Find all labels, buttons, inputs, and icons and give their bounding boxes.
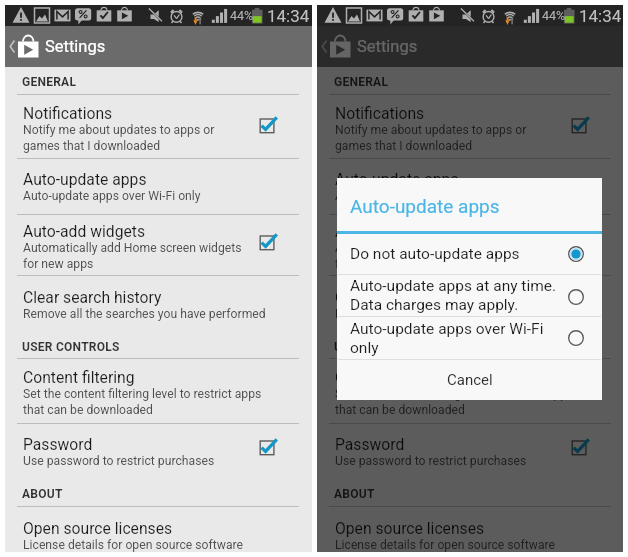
staticText: Set the content filtering level to restr…: [335, 387, 574, 417]
button[interactable]: Toggle: [561, 429, 599, 467]
staticText: ABOUT: [22, 487, 63, 501]
staticText: Content filtering: [23, 368, 135, 386]
staticText: Remove all the searches you have perform…: [23, 307, 266, 321]
staticText: Automatically add Home screen widgets fo…: [23, 241, 242, 271]
button[interactable]: [317, 214, 623, 275]
staticText: License details for open source software: [335, 538, 555, 552]
button[interactable]: Toggle: [249, 224, 287, 262]
staticText: 44%: [542, 8, 566, 23]
staticText: Auto-update apps over Wi-Fi only: [23, 189, 201, 203]
staticText: Auto-update apps: [350, 195, 500, 217]
staticText: Password: [335, 435, 405, 453]
staticText: Auto-update apps over Wi-Fi only: [350, 320, 544, 357]
staticText: 44%: [230, 8, 254, 23]
button[interactable]: [317, 95, 623, 158]
button[interactable]: [317, 158, 623, 214]
button[interactable]: Toggle: [249, 429, 287, 467]
staticText: Clear search history: [23, 288, 162, 306]
staticText: 14:34: [267, 6, 310, 26]
staticText: Auto-update apps: [23, 170, 147, 188]
button[interactable]: Toggle: [249, 107, 287, 145]
button[interactable]: [317, 275, 623, 327]
button[interactable]: Navigate up: [5, 26, 312, 67]
staticText: License details for open source software: [23, 538, 243, 552]
staticText: Set the content filtering level to restr…: [23, 387, 262, 417]
button[interactable]: Cancel: [337, 359, 602, 400]
button[interactable]: [5, 95, 312, 158]
button[interactable]: [5, 158, 312, 214]
button[interactable]: [317, 424, 623, 476]
staticText: ABOUT: [334, 487, 375, 501]
staticText: Open source licenses: [23, 519, 173, 537]
staticText: Auto-update apps: [335, 170, 459, 188]
staticText: Settings: [357, 37, 418, 56]
button[interactable]: Auto-update apps over Wi-Fi only: [337, 317, 602, 359]
staticText: Auto-update apps over Wi-Fi only: [335, 189, 513, 203]
staticText: USER CONTROLS: [22, 340, 120, 354]
staticText: Notify me about updates to apps or games…: [335, 123, 527, 153]
staticText: Password: [23, 435, 93, 453]
staticText: Notifications: [335, 104, 425, 122]
staticText: Use password to restrict purchases: [23, 454, 215, 468]
button[interactable]: Do not auto-update apps: [337, 234, 602, 274]
staticText: Auto-add widgets: [23, 222, 145, 240]
staticText: Do not auto-update apps: [350, 245, 520, 263]
staticText: Settings: [45, 37, 106, 56]
staticText: Clear search history: [335, 288, 474, 306]
button[interactable]: [5, 424, 312, 476]
staticText: Notifications: [23, 104, 113, 122]
staticText: 14:34: [579, 6, 622, 26]
staticText: Automatically add Home screen widgets fo…: [335, 241, 554, 271]
button[interactable]: [5, 359, 312, 424]
staticText: GENERAL: [334, 75, 389, 89]
staticText: Auto-add widgets: [335, 222, 457, 240]
button[interactable]: Toggle: [561, 224, 599, 262]
button[interactable]: Navigate up: [317, 26, 623, 67]
staticText: Cancel: [447, 371, 493, 389]
button[interactable]: [5, 506, 312, 557]
button[interactable]: [317, 506, 623, 557]
button[interactable]: Auto-update apps at any time. Data charg…: [337, 275, 602, 316]
button[interactable]: [317, 359, 623, 424]
staticText: Remove all the searches you have perform…: [335, 307, 578, 321]
staticText: Use password to restrict purchases: [335, 454, 527, 468]
staticText: USER CONTROLS: [334, 340, 432, 354]
staticText: GENERAL: [22, 75, 77, 89]
button[interactable]: [5, 275, 312, 327]
staticText: Content filtering: [335, 368, 447, 386]
staticText: Open source licenses: [335, 519, 485, 537]
staticText: Notify me about updates to apps or games…: [23, 123, 215, 153]
button[interactable]: [5, 214, 312, 275]
staticText: Auto-update apps at any time. Data charg…: [350, 277, 557, 314]
button[interactable]: Toggle: [561, 107, 599, 145]
